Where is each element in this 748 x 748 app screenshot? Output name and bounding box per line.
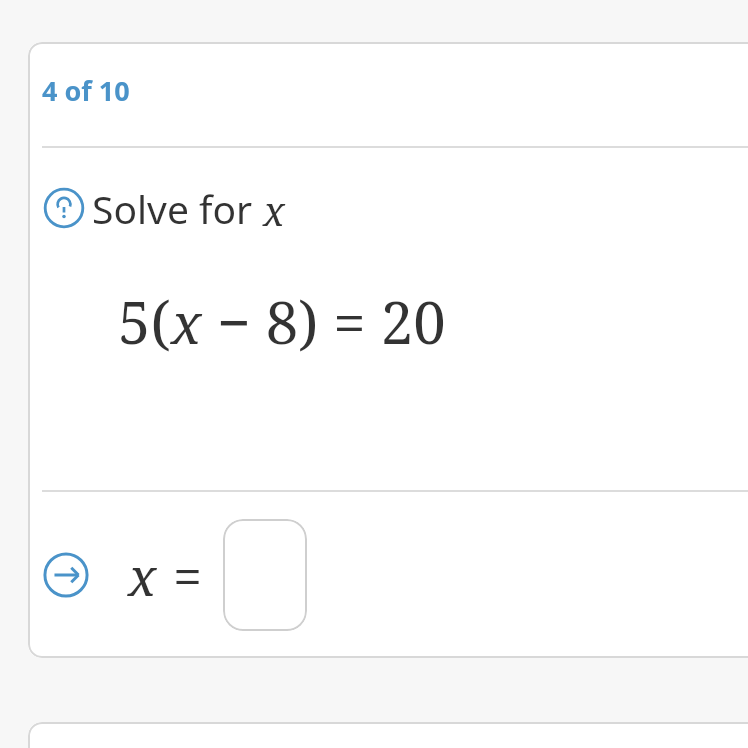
staticText: x (128, 540, 157, 611)
staticText: x (171, 284, 202, 360)
button[interactable] (28, 722, 748, 748)
staticText: 4 of 10 (42, 72, 130, 109)
staticText: − 8) = 20 (202, 282, 446, 361)
staticText: 5( (118, 282, 171, 361)
staticText: = (173, 540, 203, 611)
button[interactable]: Submit answer (42, 551, 90, 599)
button[interactable]: Question hint (42, 186, 86, 230)
button[interactable]: 4 of 10 (28, 42, 748, 658)
button[interactable]: Answer input (223, 519, 307, 631)
staticText: x (263, 183, 285, 237)
staticText: Solve for (92, 182, 263, 235)
